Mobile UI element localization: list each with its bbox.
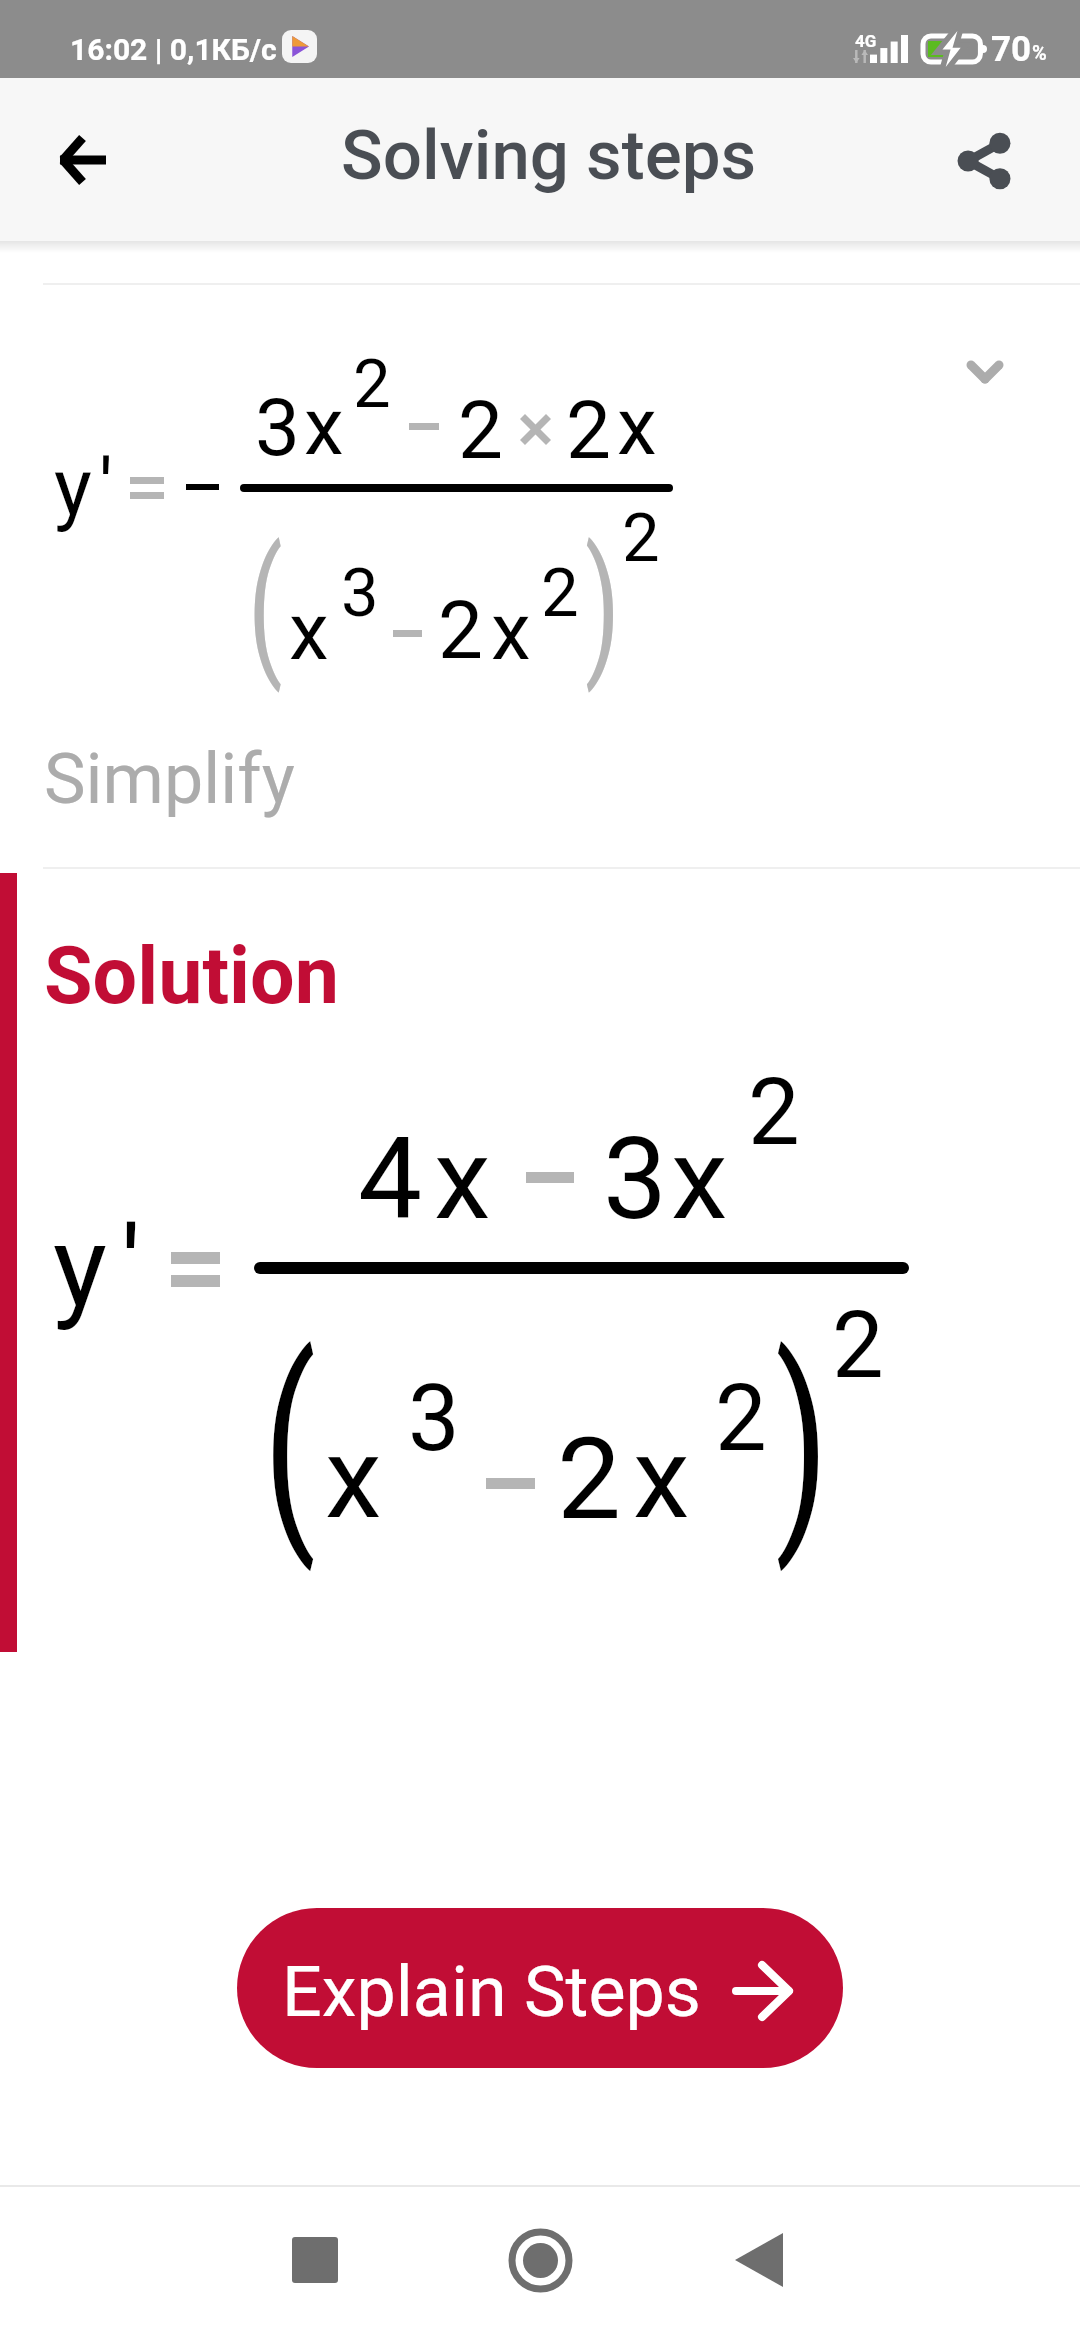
staticText: x: [289, 585, 329, 679]
staticText: 2: [557, 1412, 622, 1546]
staticText: x: [434, 1112, 491, 1246]
staticText: 3: [255, 381, 300, 475]
button[interactable]: Share: [898, 78, 1072, 241]
staticText: x: [617, 380, 657, 474]
staticText: 3: [603, 1112, 668, 1246]
staticText: 2: [458, 384, 503, 478]
staticText: (: [263, 1314, 317, 1575]
button[interactable]: Back: [8, 78, 156, 241]
staticText: 2: [353, 345, 391, 424]
staticText: ': [121, 1201, 141, 1335]
staticText: 3: [408, 1365, 460, 1473]
staticText: 70: [991, 29, 1032, 70]
staticText: 2: [566, 384, 611, 478]
button[interactable]: Collapse step: [945, 332, 1025, 412]
staticText: x: [671, 1112, 728, 1246]
staticText: 2: [832, 1292, 884, 1400]
staticText: x: [325, 1411, 382, 1545]
staticText: %: [1032, 41, 1047, 64]
staticText: 2: [438, 584, 483, 678]
staticText: y: [54, 441, 92, 535]
staticText: 16:02 | 0,1КБ/c: [70, 32, 277, 67]
button[interactable]: Home: [481, 2195, 599, 2325]
staticText: (: [248, 518, 283, 694]
staticText: x: [304, 380, 344, 474]
staticText: 3: [341, 554, 379, 633]
staticText: x: [633, 1411, 690, 1545]
staticText: 4G: [855, 31, 877, 51]
staticText: 2: [748, 1059, 800, 1167]
staticText: ': [99, 441, 113, 535]
staticText: 2: [622, 499, 660, 578]
button[interactable]: Recent apps: [256, 2195, 374, 2325]
staticText: ): [585, 518, 621, 694]
staticText: Solution: [44, 930, 339, 1023]
staticText: ): [775, 1314, 829, 1575]
staticText: Simplify: [44, 738, 295, 820]
staticText: y: [53, 1200, 107, 1334]
staticText: 2: [715, 1365, 767, 1473]
staticText: 4: [358, 1112, 423, 1246]
staticText: 2: [541, 554, 579, 633]
staticText: Explain Steps: [282, 1951, 701, 2033]
staticText: Solving steps: [341, 115, 757, 196]
staticText: x: [491, 585, 531, 679]
button[interactable]: Explain Steps: [237, 1908, 843, 2068]
button[interactable]: Back: [700, 2195, 818, 2325]
